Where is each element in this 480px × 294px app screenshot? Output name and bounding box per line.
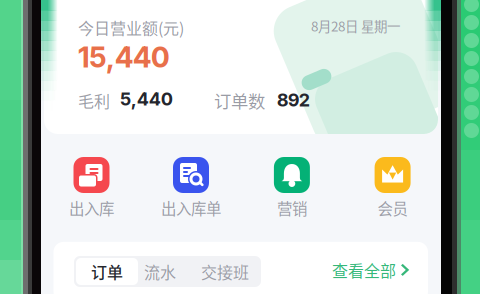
staticText: 订单数 xyxy=(214,88,265,113)
staticText: 5,440 xyxy=(120,88,173,110)
button[interactable]: 会员 xyxy=(343,157,443,217)
staticText: 毛利 xyxy=(78,89,110,112)
staticText: 15,440 xyxy=(78,40,170,74)
staticText: 流水 xyxy=(144,260,176,283)
staticText: 出入库单 xyxy=(161,197,221,219)
button[interactable]: 查看全部 xyxy=(332,259,410,281)
staticText: 查看全部 xyxy=(332,258,396,282)
staticText: 8月28日 星期一 xyxy=(311,16,400,35)
staticText: 营销 xyxy=(277,197,307,219)
button[interactable]: 营销 xyxy=(242,157,342,217)
staticText: 会员 xyxy=(378,197,408,219)
staticText: 出入库 xyxy=(69,197,114,219)
button[interactable]: 订单 xyxy=(76,258,138,285)
button[interactable]: 交接班 xyxy=(193,256,257,287)
staticText: 892 xyxy=(277,89,310,111)
staticText: 交接班 xyxy=(201,260,249,283)
button[interactable]: 出入库 xyxy=(41,157,141,217)
button[interactable]: 流水 xyxy=(135,256,185,287)
staticText: 订单 xyxy=(91,260,123,283)
button[interactable]: 出入库单 xyxy=(141,157,241,217)
staticText: 今日营业额(元) xyxy=(78,16,184,39)
